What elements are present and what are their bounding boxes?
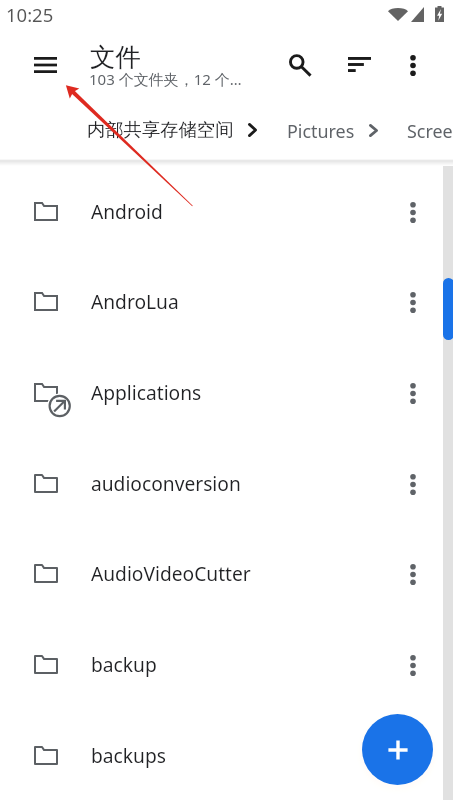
button[interactable]: backups [0, 710, 453, 801]
button[interactable]: More options for backups [390, 733, 436, 779]
staticText: AudioVideoCutter [91, 560, 407, 586]
staticText: backup [91, 651, 407, 677]
button[interactable]: More options for AndroLua [390, 279, 436, 325]
staticText: Android [91, 198, 407, 224]
button[interactable]: 内部共享存储空间 [87, 118, 234, 141]
button[interactable]: Sort [336, 45, 383, 84]
staticText: 文件 [90, 41, 141, 73]
button[interactable]: Android [0, 166, 453, 257]
button[interactable]: More options for AudioVideoCutter [390, 551, 436, 597]
button[interactable]: AudioVideoCutter [0, 528, 453, 619]
button[interactable]: Screenshots [407, 119, 453, 143]
button[interactable]: Open navigation drawer [22, 45, 69, 85]
button[interactable]: audioconversion [0, 438, 453, 529]
button[interactable]: Applications [0, 347, 453, 438]
button[interactable]: More options for Android [390, 189, 436, 235]
button[interactable]: backup [0, 619, 453, 710]
button[interactable]: Pictures [287, 119, 355, 143]
staticText: 103 个文件夹，12 个… [89, 69, 242, 89]
button[interactable]: Expand Pictures path [355, 112, 392, 149]
button[interactable]: AndroLua [0, 256, 453, 347]
button[interactable]: Add [362, 714, 433, 785]
staticText: backups [91, 742, 407, 768]
button[interactable]: Search [276, 41, 324, 89]
staticText: Applications [91, 379, 407, 405]
button[interactable]: Expand internal storage path [234, 111, 271, 148]
staticText: AndroLua [91, 288, 407, 314]
button[interactable]: More options for backup [390, 642, 436, 688]
button[interactable]: More options [390, 42, 436, 88]
staticText: audioconversion [91, 470, 407, 496]
button[interactable]: More options for audioconversion [390, 461, 436, 507]
staticText: 10:25 [6, 2, 54, 27]
button[interactable]: More options for Applications [390, 370, 436, 416]
